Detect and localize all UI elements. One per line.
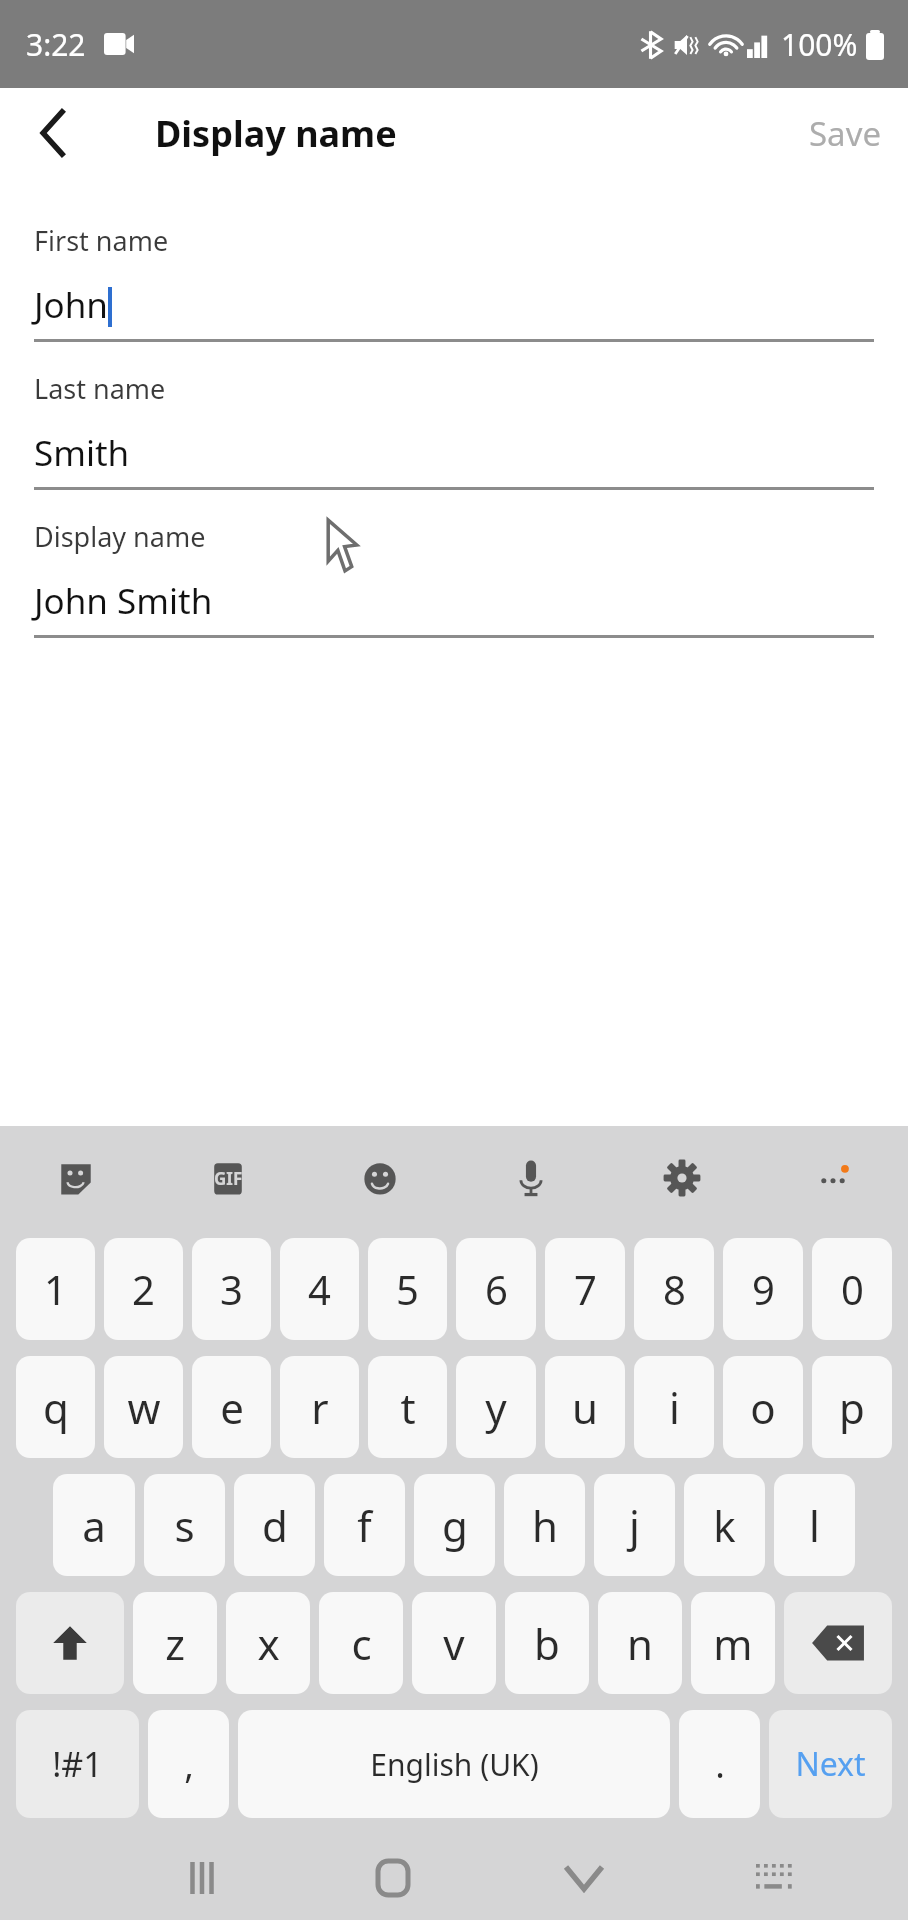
- button[interactable]: t: [368, 1356, 447, 1458]
- button[interactable]: j: [594, 1474, 675, 1576]
- button[interactable]: Last name: [0, 342, 908, 490]
- staticText: g: [442, 1497, 468, 1554]
- button[interactable]: Keyboard settings: [606, 1126, 757, 1230]
- staticText: f: [357, 1497, 372, 1554]
- staticText: ,: [184, 1740, 194, 1789]
- staticText: j: [629, 1497, 640, 1554]
- staticText: v: [443, 1615, 465, 1672]
- button[interactable]: First name: [0, 178, 908, 342]
- staticText: 4: [308, 1262, 331, 1316]
- button[interactable]: Display name: [0, 490, 908, 638]
- button[interactable]: Shift: [16, 1592, 124, 1694]
- staticText: 2: [132, 1262, 155, 1316]
- staticText: !#1: [52, 1741, 103, 1787]
- button[interactable]: q: [16, 1356, 95, 1458]
- button[interactable]: g: [414, 1474, 495, 1576]
- staticText: b: [534, 1615, 560, 1672]
- button[interactable]: Hide keyboard: [488, 1836, 679, 1920]
- button[interactable]: d: [234, 1474, 315, 1576]
- button[interactable]: r: [280, 1356, 359, 1458]
- button[interactable]: Save: [795, 101, 896, 166]
- staticText: English (UK): [370, 1744, 539, 1785]
- button[interactable]: 3: [192, 1238, 271, 1340]
- staticText: i: [669, 1379, 680, 1436]
- staticText: o: [750, 1379, 776, 1436]
- button[interactable]: More options: [757, 1126, 908, 1230]
- staticText: Display name: [155, 109, 397, 158]
- button[interactable]: ,: [148, 1710, 229, 1818]
- button[interactable]: x: [226, 1592, 310, 1694]
- button[interactable]: Next: [769, 1710, 892, 1818]
- staticText: s: [174, 1497, 195, 1554]
- staticText: w: [127, 1379, 161, 1436]
- button[interactable]: m: [691, 1592, 775, 1694]
- button[interactable]: 0: [812, 1238, 892, 1340]
- staticText: 9: [752, 1262, 775, 1316]
- button[interactable]: y: [456, 1356, 536, 1458]
- button[interactable]: s: [144, 1474, 225, 1576]
- button[interactable]: u: [545, 1356, 625, 1458]
- staticText: 1: [44, 1262, 67, 1316]
- staticText: q: [43, 1379, 69, 1436]
- staticText: d: [262, 1497, 288, 1554]
- button[interactable]: English (UK): [238, 1710, 670, 1818]
- staticText: u: [572, 1379, 598, 1436]
- button[interactable]: i: [634, 1356, 714, 1458]
- staticText: 3:22: [26, 24, 86, 65]
- button[interactable]: n: [598, 1592, 682, 1694]
- button[interactable]: o: [723, 1356, 803, 1458]
- button[interactable]: l: [774, 1474, 855, 1576]
- staticText: 6: [485, 1262, 508, 1316]
- button[interactable]: h: [504, 1474, 585, 1576]
- staticText: n: [627, 1615, 653, 1672]
- staticText: Smith: [34, 429, 130, 477]
- staticText: 0: [841, 1262, 864, 1316]
- staticText: e: [220, 1379, 244, 1436]
- staticText: r: [311, 1379, 329, 1436]
- button[interactable]: 9: [723, 1238, 803, 1340]
- staticText: Next: [795, 1742, 866, 1786]
- button[interactable]: z: [133, 1592, 217, 1694]
- staticText: .: [715, 1740, 725, 1789]
- staticText: John: [34, 281, 108, 329]
- button[interactable]: Emoji: [304, 1126, 455, 1230]
- button[interactable]: Recents: [106, 1836, 297, 1920]
- staticText: 8: [663, 1262, 686, 1316]
- button[interactable]: k: [684, 1474, 765, 1576]
- button[interactable]: p: [812, 1356, 892, 1458]
- button[interactable]: a: [53, 1474, 135, 1576]
- staticText: GIF: [214, 1167, 243, 1190]
- staticText: 100%: [781, 24, 858, 65]
- staticText: y: [485, 1379, 507, 1436]
- button[interactable]: v: [412, 1592, 496, 1694]
- button[interactable]: Change keyboard: [679, 1836, 870, 1920]
- button[interactable]: c: [319, 1592, 403, 1694]
- button[interactable]: e: [192, 1356, 271, 1458]
- button[interactable]: Voice input: [455, 1126, 606, 1230]
- button[interactable]: 6: [456, 1238, 536, 1340]
- staticText: Last name: [34, 370, 166, 407]
- button[interactable]: 2: [104, 1238, 183, 1340]
- button[interactable]: GIF: [152, 1126, 304, 1230]
- staticText: x: [257, 1615, 280, 1672]
- button[interactable]: 5: [368, 1238, 447, 1340]
- button[interactable]: Sticker: [0, 1126, 152, 1230]
- button[interactable]: 4: [280, 1238, 359, 1340]
- button[interactable]: b: [505, 1592, 589, 1694]
- button[interactable]: 1: [16, 1238, 95, 1340]
- button[interactable]: .: [679, 1710, 760, 1818]
- staticText: z: [165, 1615, 185, 1672]
- button[interactable]: Backspace: [784, 1592, 892, 1694]
- staticText: p: [839, 1379, 865, 1436]
- button[interactable]: w: [104, 1356, 183, 1458]
- button[interactable]: Back: [22, 102, 84, 164]
- button[interactable]: f: [324, 1474, 405, 1576]
- staticText: 5: [396, 1262, 419, 1316]
- button[interactable]: !#1: [16, 1710, 139, 1818]
- button[interactable]: 7: [545, 1238, 625, 1340]
- staticText: c: [351, 1615, 372, 1672]
- button[interactable]: 8: [634, 1238, 714, 1340]
- staticText: k: [713, 1497, 736, 1554]
- button[interactable]: Home: [297, 1836, 488, 1920]
- staticText: m: [713, 1615, 753, 1672]
